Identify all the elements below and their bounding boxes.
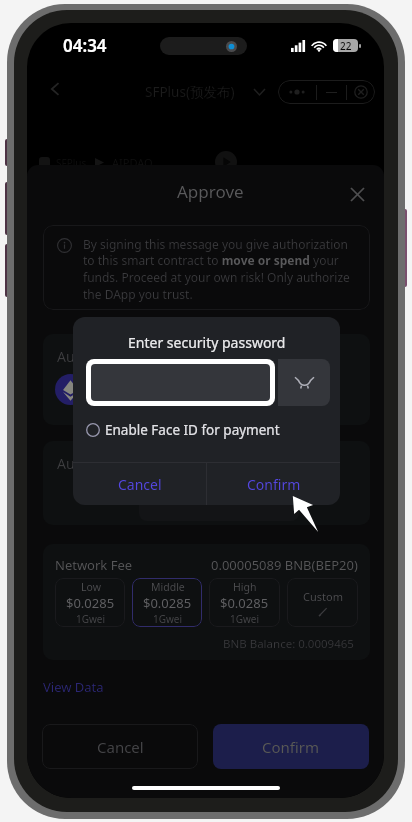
staticText: View Data <box>43 678 104 696</box>
staticText: 1Gwei <box>230 612 260 626</box>
staticText: $0.0285 <box>220 594 269 612</box>
staticText: Low <box>81 580 101 594</box>
staticText: 0.00005089 BNB(BEP20) <box>211 556 358 574</box>
button[interactable]: Confirm <box>213 724 369 769</box>
staticText: SFPlus <box>56 156 87 170</box>
staticText: 1Gwei <box>76 612 106 626</box>
button[interactable] <box>91 364 270 401</box>
button[interactable]: Middle <box>132 578 202 627</box>
staticText: Authorization <box>57 454 147 473</box>
staticText: Confirm <box>262 737 320 757</box>
staticText: AIPDAO <box>112 155 153 170</box>
staticText: High <box>233 580 257 594</box>
staticText: Middle <box>151 580 185 594</box>
button[interactable]: View Data <box>41 676 106 698</box>
staticText: BNB Balance: 0.0009465 <box>223 636 354 652</box>
button[interactable]: Close <box>350 187 365 202</box>
button[interactable]: Custom <box>287 578 358 627</box>
staticText: 22 <box>340 39 352 52</box>
staticText: By signing this message you give authori… <box>83 236 358 302</box>
staticText: Enable Face ID for payment <box>105 421 280 439</box>
staticText: Custom <box>303 589 343 604</box>
staticText: Network Fee <box>55 556 133 574</box>
button[interactable]: High <box>209 578 280 627</box>
staticText: 04:34 <box>63 34 107 57</box>
staticText: $0.0285 <box>143 594 192 612</box>
staticText: Cancel <box>97 737 144 757</box>
staticText: 1Gwei <box>153 612 183 626</box>
button[interactable]: Cancel <box>73 463 206 505</box>
button[interactable]: Minimize <box>317 80 346 104</box>
button[interactable]: Confirm <box>207 463 340 505</box>
button[interactable]: Back <box>47 81 63 97</box>
button[interactable]: Enable Face ID for payment <box>86 417 330 443</box>
button[interactable]: Low <box>55 578 125 627</box>
button[interactable]: More <box>278 80 316 104</box>
button[interactable]: Close <box>347 80 375 104</box>
staticText: Authorize to <box>57 347 138 366</box>
button[interactable]: Cancel <box>42 724 198 769</box>
staticText: SFPlus(预发布) <box>145 83 235 101</box>
staticText: Cancel <box>118 475 162 494</box>
staticText: $0.0285 <box>66 594 115 612</box>
button[interactable]: Show password <box>278 359 330 406</box>
staticText: Approve <box>177 180 244 203</box>
staticText: Confirm <box>247 475 301 494</box>
staticText: Enter security password <box>128 333 286 352</box>
